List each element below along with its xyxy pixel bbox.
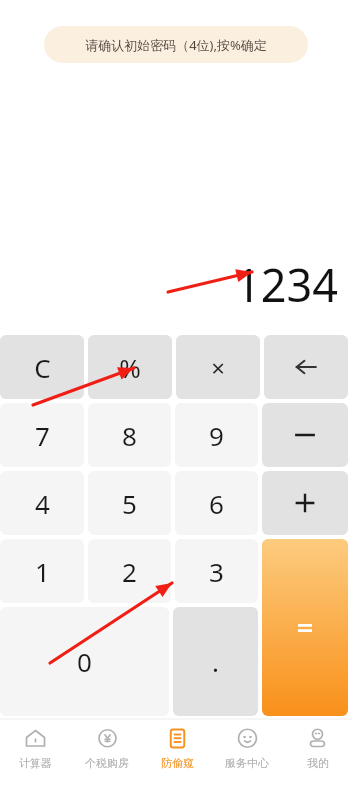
staticText: %	[119, 350, 141, 385]
button[interactable]: 2	[88, 539, 171, 603]
staticText: 服务中心	[225, 756, 269, 770]
staticText: 4	[35, 486, 50, 521]
button[interactable]: Minus	[262, 403, 348, 467]
button[interactable]: 防偷窥	[142, 719, 212, 787]
button[interactable]: Equals	[262, 539, 348, 716]
button[interactable]: ×	[176, 335, 260, 399]
button[interactable]: 8	[88, 403, 171, 467]
button[interactable]: 6	[175, 471, 258, 535]
staticText: 计算器	[19, 756, 52, 770]
staticText: 请确认初始密码（4位),按%确定	[85, 36, 267, 54]
staticText: 7	[35, 418, 50, 453]
staticText: 5	[122, 486, 137, 521]
button[interactable]: C	[0, 335, 84, 399]
button[interactable]: 0	[0, 607, 169, 716]
staticText: .	[212, 644, 219, 679]
button[interactable]: .	[173, 607, 258, 716]
button[interactable]: 计算器	[0, 719, 71, 787]
staticText: 3	[209, 554, 224, 589]
button[interactable]: 9	[175, 403, 258, 467]
button[interactable]: 我的	[282, 719, 352, 787]
button[interactable]: 个税购房	[71, 719, 142, 787]
button[interactable]: Plus	[262, 471, 348, 535]
staticText: 6	[209, 486, 224, 521]
button[interactable]: 3	[175, 539, 258, 603]
staticText: 2	[122, 554, 137, 589]
button[interactable]: %	[88, 335, 172, 399]
button[interactable]: 请确认初始密码（4位),按%确定	[44, 26, 308, 63]
staticText: 防偷窥	[161, 756, 194, 770]
button[interactable]: 5	[88, 471, 171, 535]
button[interactable]: 服务中心	[212, 719, 282, 787]
staticText: 9	[209, 418, 224, 453]
staticText: 我的	[307, 756, 329, 770]
staticText: 0	[77, 644, 92, 679]
staticText: C	[34, 350, 51, 385]
staticText: 1	[35, 554, 50, 589]
staticText: 8	[122, 418, 137, 453]
button[interactable]: 7	[0, 403, 84, 467]
staticText: 1234	[235, 254, 338, 315]
staticText: ×	[211, 351, 225, 384]
staticText: 个税购房	[85, 756, 129, 770]
button[interactable]: 1	[0, 539, 84, 603]
button[interactable]: Backspace	[264, 335, 348, 399]
button[interactable]: 4	[0, 471, 84, 535]
